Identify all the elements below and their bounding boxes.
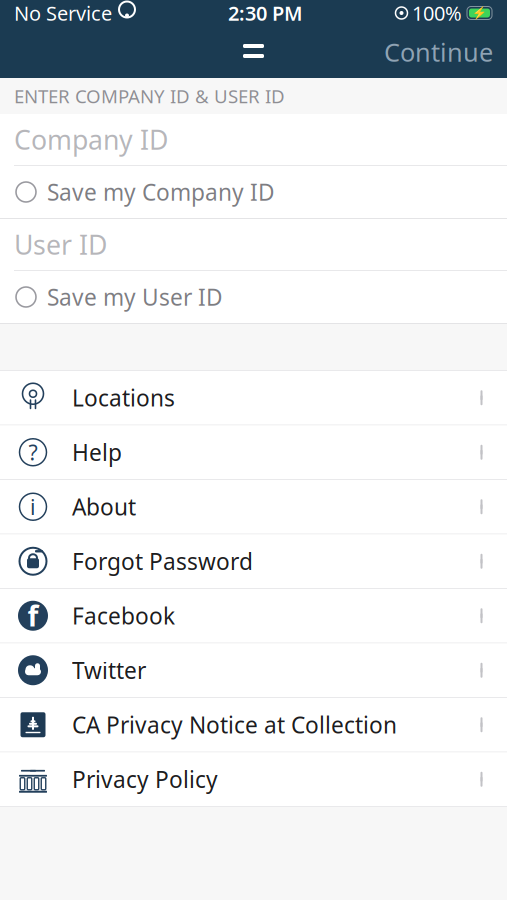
button[interactable]: CA Privacy Notice at Collection	[0, 698, 507, 752]
staticText: Facebook	[72, 601, 175, 631]
button[interactable]: i	[0, 480, 507, 534]
staticText: f	[27, 597, 38, 634]
staticText: Locations	[72, 383, 175, 413]
button[interactable]: Privacy Policy	[0, 752, 507, 807]
button[interactable]: Company ID	[0, 114, 507, 166]
button[interactable]: Twitter	[0, 643, 507, 698]
staticText: ENTER COMPANY ID & USER ID	[14, 84, 285, 108]
staticText: Privacy Policy	[72, 764, 218, 794]
staticText: Forgot Password	[72, 546, 253, 576]
staticText: Help	[72, 437, 122, 467]
staticText: 100%	[412, 0, 462, 26]
button[interactable]: Save my User ID	[0, 271, 507, 324]
staticText: ⚡	[472, 6, 487, 20]
button[interactable]: Continue	[370, 30, 507, 74]
button[interactable]: f	[0, 589, 507, 643]
staticText: Continue	[384, 35, 493, 69]
staticText: User ID	[14, 227, 107, 262]
staticText: Twitter	[72, 655, 146, 685]
staticText: i	[30, 493, 36, 521]
button[interactable]: ?	[0, 425, 507, 480]
button[interactable]: Save my Company ID	[0, 166, 507, 219]
staticText: Company ID	[14, 122, 168, 157]
staticText: CA Privacy Notice at Collection	[72, 710, 397, 740]
staticText: About	[72, 492, 136, 522]
staticText: Save my User ID	[47, 282, 223, 312]
staticText: Save my Company ID	[47, 177, 275, 207]
staticText: ?	[28, 438, 37, 466]
button[interactable]: Locations	[0, 371, 507, 425]
staticText: No Service	[14, 0, 112, 26]
button[interactable]: User ID	[0, 219, 507, 271]
button[interactable]: Forgot Password	[0, 534, 507, 589]
staticText: 2:30 PM	[228, 0, 303, 26]
button[interactable]: Home	[236, 35, 270, 69]
